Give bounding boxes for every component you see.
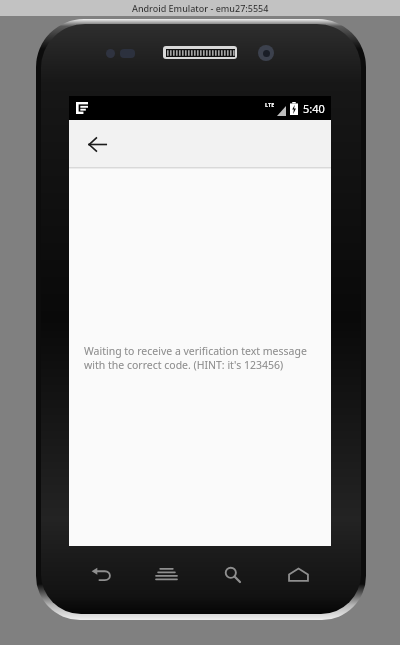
- staticText: Waiting to receive a verification text m…: [84, 344, 322, 372]
- button[interactable]: Search: [199, 557, 265, 591]
- button[interactable]: Home: [265, 557, 331, 591]
- staticText: Android Emulator - emu27:5554: [132, 2, 269, 14]
- button[interactable]: Back: [75, 122, 119, 166]
- button[interactable]: Menu: [134, 557, 199, 591]
- staticText: 5:40: [303, 101, 325, 116]
- staticText: LTE: [265, 101, 275, 108]
- button[interactable]: Back: [69, 557, 134, 591]
